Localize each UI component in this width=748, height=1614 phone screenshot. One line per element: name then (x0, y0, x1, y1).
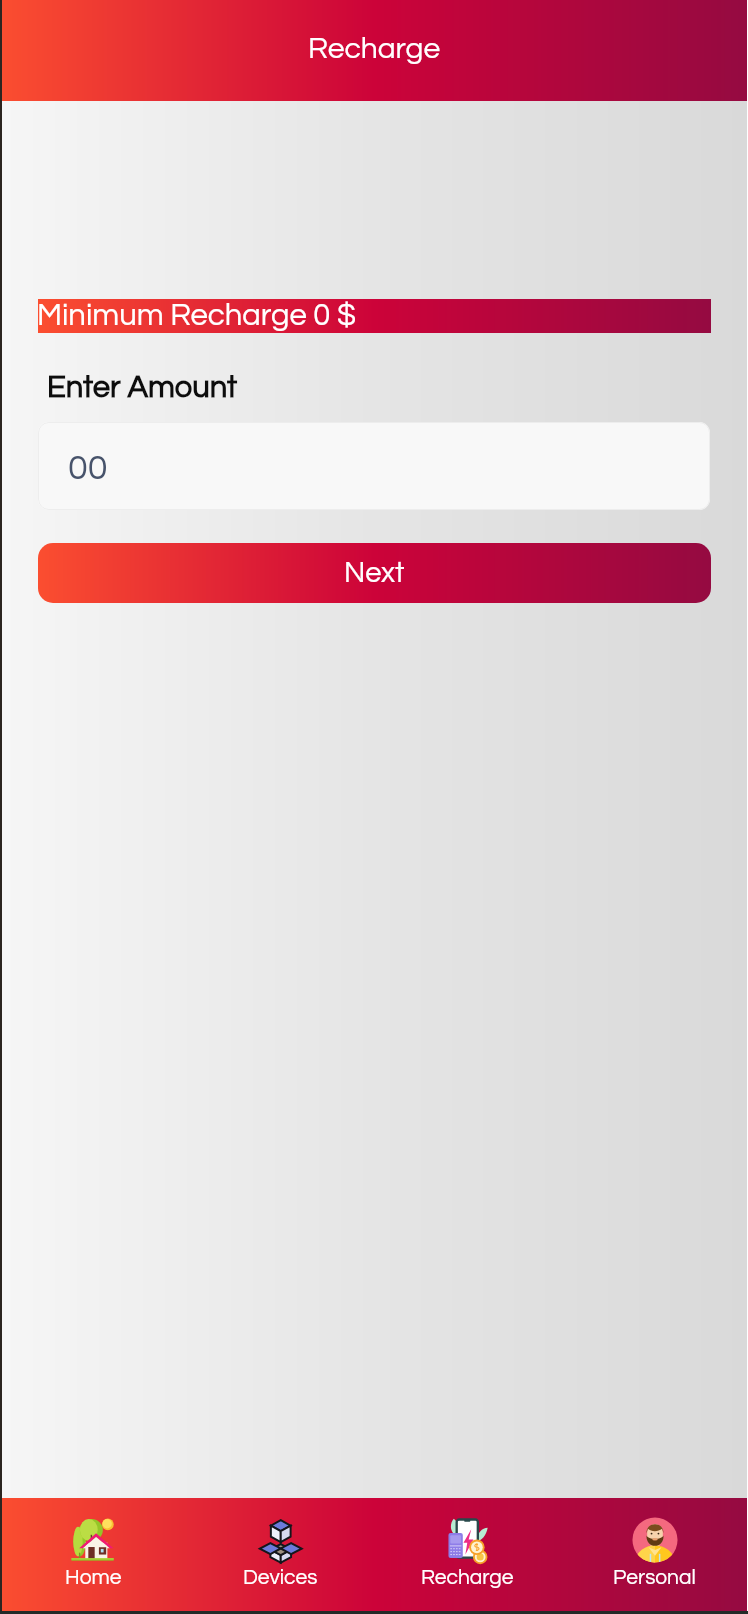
button[interactable]: 00 (38, 422, 710, 510)
staticText: Minimum Recharge 0 $ (37, 300, 357, 332)
staticText: 00 (68, 449, 108, 486)
staticText: Recharge (308, 33, 441, 64)
button[interactable]: Home (0, 1498, 187, 1614)
staticText: Devices (243, 1567, 318, 1589)
staticText: Home (65, 1567, 122, 1589)
button[interactable]: Personal (561, 1498, 748, 1614)
other: Personal (632, 1517, 678, 1563)
other: Home (70, 1516, 117, 1563)
button[interactable]: Devices (187, 1498, 374, 1614)
staticText: Next (344, 558, 405, 588)
staticText: Recharge (421, 1567, 514, 1589)
button[interactable]: Recharge (374, 1498, 561, 1614)
other: Recharge (444, 1516, 491, 1563)
other: Devices (257, 1516, 304, 1563)
button[interactable]: Next (38, 543, 711, 603)
staticText: Personal (613, 1567, 696, 1589)
staticText: Enter Amount (47, 372, 238, 404)
